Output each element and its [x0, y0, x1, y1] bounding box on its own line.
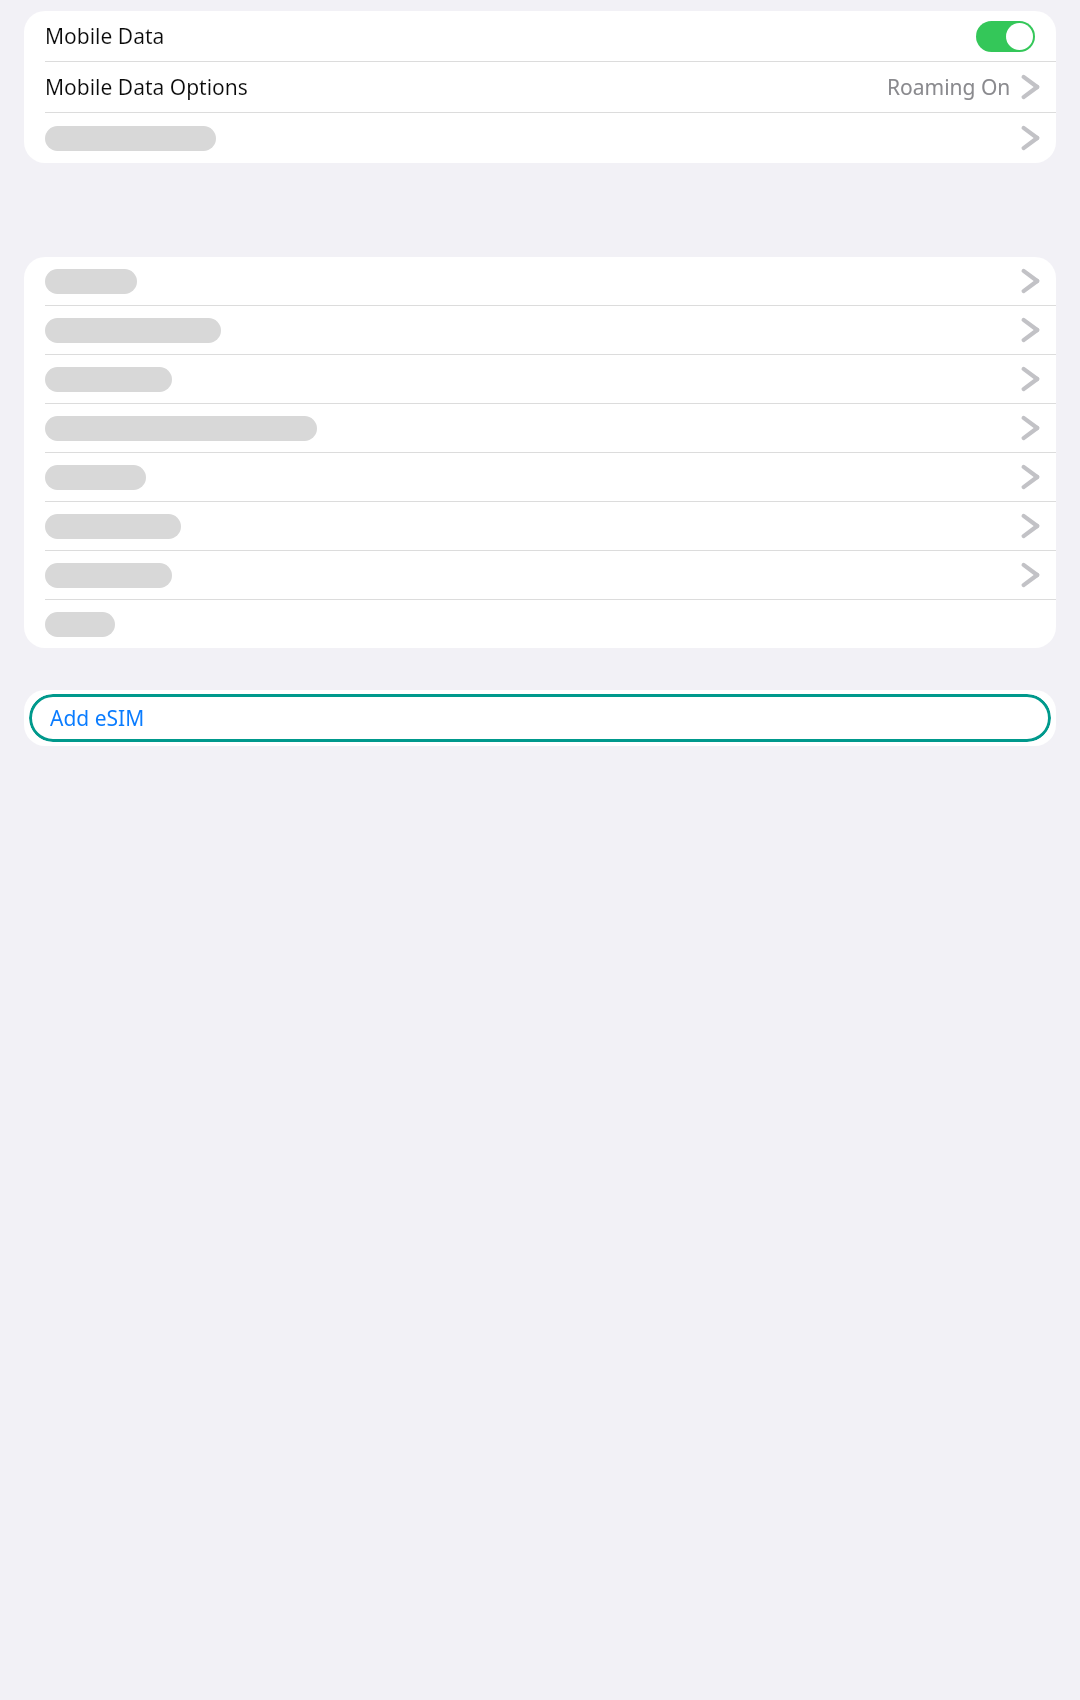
- staticText: Mobile Data: [45, 22, 165, 51]
- button[interactable]: Mobile Data Options: [24, 62, 1056, 112]
- button[interactable]: [24, 257, 1056, 305]
- button[interactable]: Mobile Data: [24, 11, 1056, 61]
- staticText: Mobile Data Options: [45, 73, 248, 102]
- button[interactable]: [24, 600, 1056, 648]
- button[interactable]: [24, 551, 1056, 599]
- button[interactable]: [24, 355, 1056, 403]
- button[interactable]: [24, 306, 1056, 354]
- button[interactable]: [24, 502, 1056, 550]
- staticText: Roaming On: [887, 73, 1011, 102]
- button[interactable]: Add eSIM: [29, 694, 1051, 742]
- staticText: Add eSIM: [50, 704, 145, 733]
- button[interactable]: [24, 113, 1056, 163]
- button[interactable]: [24, 404, 1056, 452]
- button[interactable]: [24, 453, 1056, 501]
- button[interactable]: Mobile Data toggle: [976, 21, 1035, 52]
